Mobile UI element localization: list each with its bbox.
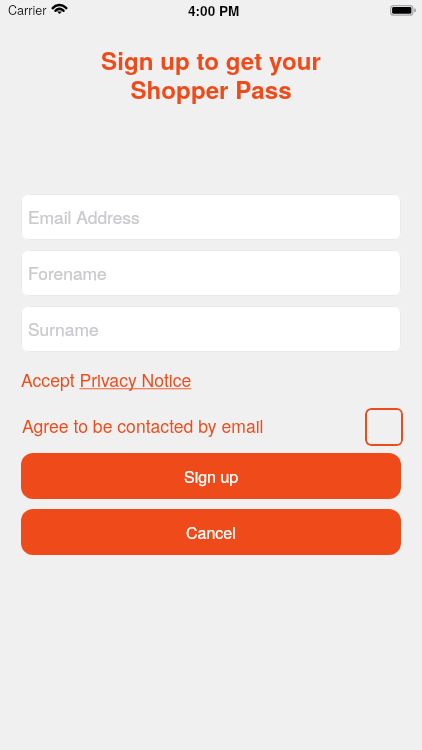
staticText: Forename — [28, 260, 107, 285]
staticText: Sign up to get your Shopper Pass — [0, 43, 422, 106]
button[interactable]: Surname — [21, 306, 401, 352]
button[interactable]: Sign up — [21, 453, 401, 499]
button[interactable]: Email Address — [21, 194, 401, 240]
button[interactable]: Accept Privacy Notice — [21, 364, 192, 395]
staticText: Accept Privacy Notice — [21, 367, 192, 392]
button[interactable]: Forename — [21, 250, 401, 296]
staticText: Agree to be contacted by email — [22, 413, 264, 438]
staticText: Cancel — [186, 521, 236, 544]
staticText: Surname — [28, 316, 99, 341]
staticText: Sign up — [184, 465, 239, 488]
staticText: Email Address — [28, 204, 140, 229]
staticText: Carrier — [8, 1, 47, 19]
staticText: 4:00 PM — [188, 1, 240, 20]
button[interactable]: Cancel — [21, 509, 401, 555]
button[interactable]: Agree to be contacted by email — [365, 408, 403, 446]
